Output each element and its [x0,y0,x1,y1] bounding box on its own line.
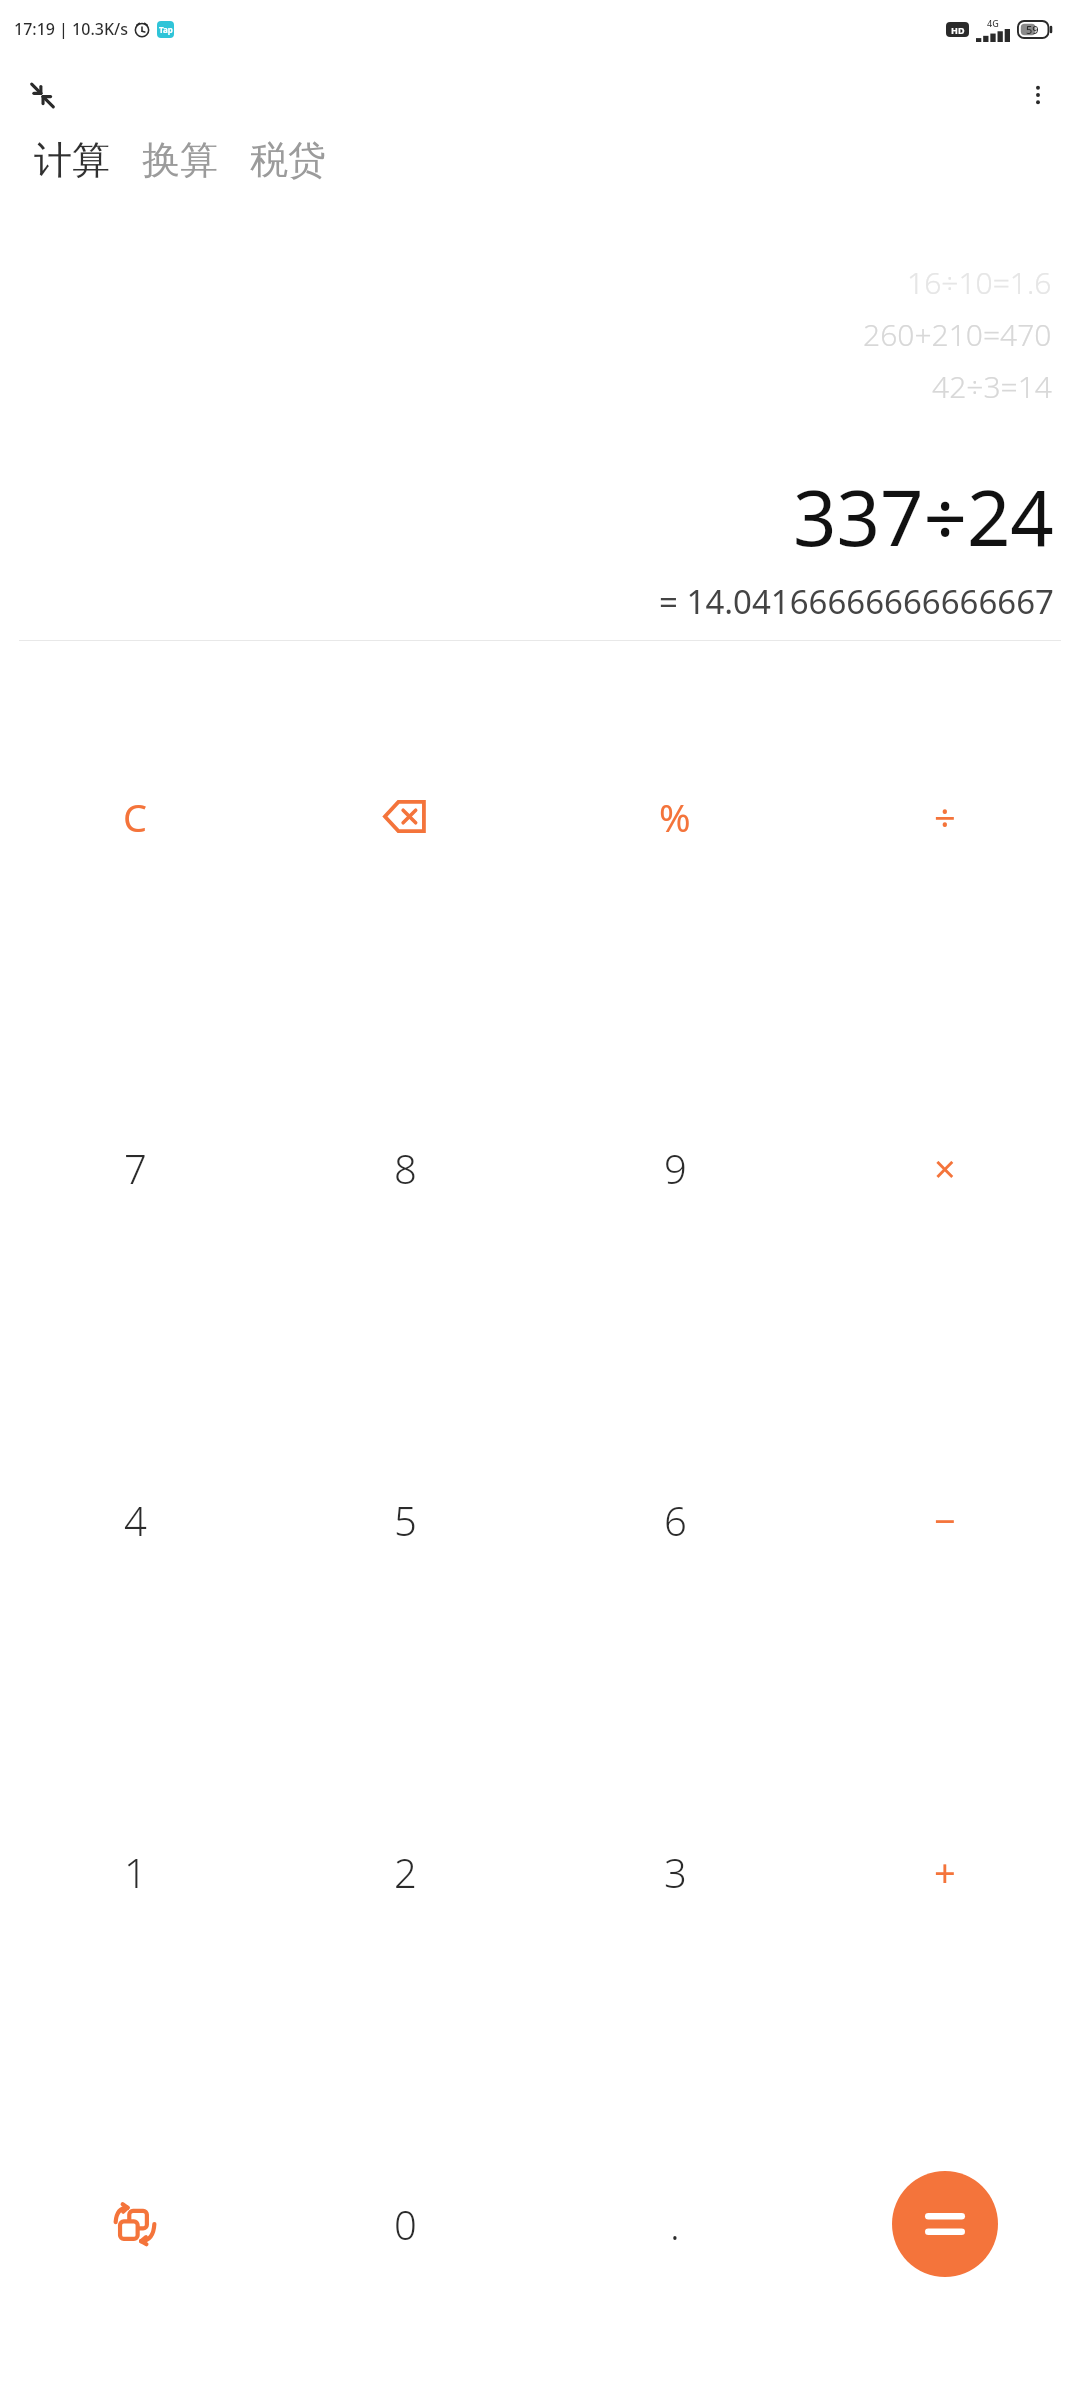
button[interactable]: More options [1010,67,1066,123]
button[interactable]: 4 [0,1344,270,1696]
button[interactable]: 5 [270,1344,540,1696]
button[interactable]: Convert [0,2048,270,2400]
staticText: 3 [664,1845,687,1899]
staticText: HD [951,24,965,36]
staticText: 16÷10=1.6 [907,262,1052,303]
button[interactable]: × [810,992,1080,1344]
staticText: 6 [664,1493,687,1547]
staticText: 税贷 [250,136,326,184]
button[interactable]: 换算 [136,132,224,188]
button[interactable]: 3 [540,1696,810,2048]
button[interactable]: 0 [270,2048,540,2400]
button[interactable]: 计算 [28,132,116,188]
staticText: 59 [1026,22,1039,37]
button[interactable]: 6 [540,1344,810,1696]
staticText: 9 [664,1141,687,1195]
button[interactable]: 7 [0,992,270,1344]
staticText: Tap [159,24,173,35]
button[interactable]: Backspace [270,641,540,992]
staticText: ÷ [934,791,956,843]
staticText: 42÷3=14 [932,366,1052,407]
button[interactable]: ÷ [810,641,1080,992]
staticText: × [934,1142,956,1194]
staticText: 5 [394,1493,417,1547]
staticText: . [670,2197,680,2251]
button[interactable]: + [810,1696,1080,2048]
button[interactable]: 9 [540,992,810,1344]
button[interactable]: C [0,641,270,992]
staticText: % [659,791,691,843]
staticText: 260+210=470 [863,314,1052,355]
staticText: = 14.04166666666666667 [659,579,1054,624]
staticText: 换算 [142,136,218,184]
button[interactable]: 2 [270,1696,540,2048]
staticText: 1 [124,1845,147,1899]
button[interactable]: Collapse [14,67,70,123]
button[interactable]: − [810,1344,1080,1696]
staticText: 4G [987,17,999,29]
staticText: 4 [124,1493,147,1547]
staticText: 0 [394,2197,417,2251]
staticText: + [934,1846,956,1898]
button[interactable]: 税贷 [244,132,332,188]
staticText: 计算 [34,136,110,184]
staticText: 2 [394,1845,417,1899]
button[interactable]: 1 [0,1696,270,2048]
staticText: 7 [124,1141,147,1195]
button[interactable]: Equals [810,2048,1080,2400]
button[interactable]: % [540,641,810,992]
staticText: − [934,1494,956,1546]
staticText: 337÷24 [793,465,1054,569]
staticText: C [123,791,148,843]
staticText: 8 [394,1141,417,1195]
staticText: 17:19 | 10.3K/s [14,18,128,40]
button[interactable]: 8 [270,992,540,1344]
